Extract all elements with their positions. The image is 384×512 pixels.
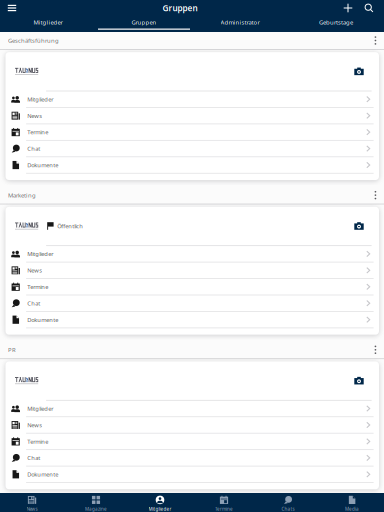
staticText: News [27, 266, 42, 274]
staticText: Gruppen [131, 18, 156, 26]
button[interactable]: Dokumente [5, 466, 379, 483]
staticText: News [27, 112, 42, 120]
button[interactable]: Termine [5, 434, 379, 450]
staticText: Media [345, 506, 359, 512]
staticText: Geschäftsführung [8, 36, 59, 44]
staticText: Chat [27, 145, 40, 152]
staticText: Öffentlich [57, 222, 83, 230]
staticText: Administrator [220, 18, 259, 26]
button[interactable]: Gruppen [96, 16, 192, 32]
button[interactable]: Change group photo [352, 64, 366, 78]
staticText: Mitglieder [27, 250, 53, 258]
button[interactable]: News [0, 493, 64, 512]
button[interactable]: More options for Geschäftsführung [370, 34, 381, 47]
staticText: Chat [27, 299, 40, 307]
staticText: Gruppen [162, 2, 197, 14]
button[interactable]: Administrator [192, 16, 288, 32]
button[interactable]: Dokumente [5, 312, 379, 328]
button[interactable]: Search [362, 0, 376, 16]
staticText: PR [8, 346, 16, 354]
button[interactable]: Termine [5, 124, 379, 141]
staticText: Mitglieder [148, 506, 171, 512]
button[interactable]: Mitglieder [128, 493, 192, 512]
button[interactable]: Mitglieder [0, 16, 96, 32]
button[interactable]: Chat [5, 295, 379, 312]
button[interactable]: More options for Marketing [370, 189, 381, 202]
staticText: Marketing [8, 191, 36, 199]
button[interactable]: Menu [5, 0, 19, 16]
staticText: Dokumente [27, 470, 58, 478]
staticText: Termine [27, 437, 48, 445]
button[interactable]: Dokumente [5, 157, 379, 174]
button[interactable]: Mitglieder [5, 401, 379, 417]
staticText: Mitglieder [27, 405, 53, 412]
button[interactable]: Termine [5, 279, 379, 295]
button[interactable]: Change group photo [352, 219, 366, 233]
staticText: Chat [27, 454, 40, 462]
staticText: Chats [281, 506, 294, 512]
button[interactable]: Add group [341, 0, 355, 16]
button[interactable]: News [5, 108, 379, 124]
staticText: Dokumente [27, 316, 58, 324]
staticText: News [26, 506, 37, 512]
button[interactable]: Change group photo [352, 374, 366, 388]
staticText: Mitglieder [27, 95, 53, 103]
button[interactable]: News [5, 262, 379, 279]
button[interactable]: Chats [256, 493, 320, 512]
staticText: Termine [215, 506, 233, 512]
button[interactable]: Chat [5, 450, 379, 466]
button[interactable]: Termine [192, 493, 256, 512]
button[interactable]: Mitglieder [5, 91, 379, 108]
button[interactable]: Media [320, 493, 384, 512]
button[interactable]: Chat [5, 141, 379, 157]
button[interactable]: Geburtstage [288, 16, 384, 32]
staticText: Termine [27, 128, 48, 136]
staticText: Dokumente [27, 161, 58, 169]
staticText: Magazine [85, 506, 107, 512]
staticText: Geburtstage [319, 18, 353, 26]
button[interactable]: More options for PR [370, 343, 381, 356]
staticText: Termine [27, 283, 48, 291]
button[interactable]: Magazine [64, 493, 128, 512]
staticText: Mitglieder [33, 18, 62, 26]
button[interactable]: News [5, 417, 379, 434]
staticText: News [27, 421, 42, 429]
button[interactable]: Mitglieder [5, 246, 379, 262]
